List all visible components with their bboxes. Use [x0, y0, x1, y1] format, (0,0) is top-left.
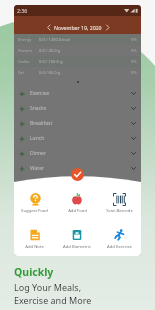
staticText: 2:36	[17, 7, 28, 14]
button[interactable]: Add Biometric	[56, 228, 98, 250]
button[interactable]: Confirm	[71, 168, 84, 181]
staticText: Protein	[18, 48, 32, 54]
staticText: Lunch	[30, 135, 45, 142]
staticText: Add Exercise	[107, 244, 132, 250]
staticText: Quickly	[14, 265, 54, 279]
staticText: 0.0 / 60.0 g	[39, 70, 61, 76]
staticText: Water	[30, 165, 45, 172]
staticText: Breakfast	[30, 120, 53, 127]
staticText: Energy	[18, 37, 32, 43]
button[interactable]: Lunch	[14, 131, 141, 146]
button[interactable]: Energy	[14, 34, 141, 45]
staticText: Dinner	[30, 150, 47, 157]
staticText: Scan Barcode	[106, 208, 133, 214]
staticText: Exercise	[30, 90, 50, 97]
button[interactable]: Scan Barcode	[98, 192, 140, 214]
button[interactable]: Breakfast	[14, 116, 141, 131]
staticText: Add Biometric	[63, 244, 91, 250]
staticText: Snacks	[30, 105, 47, 112]
staticText: Add Note	[25, 244, 44, 250]
button[interactable]: Add Food	[56, 192, 98, 214]
staticText: Fat	[18, 70, 24, 76]
button[interactable]: Dinner	[14, 146, 141, 161]
staticText: Carbs	[18, 59, 30, 65]
button[interactable]: Water	[14, 161, 141, 176]
staticText: 0.0 / 1200.0 kcal	[39, 37, 70, 43]
button[interactable]: Add Note	[14, 228, 56, 250]
staticText: Log Your Meals,	[14, 281, 82, 293]
button[interactable]: Fat	[14, 67, 141, 78]
button[interactable]: Exercise	[14, 86, 141, 101]
staticText: 0%	[131, 37, 137, 43]
button[interactable]: Previous day	[45, 23, 52, 32]
staticText: 0%	[131, 59, 137, 65]
button[interactable]: Snacks	[14, 101, 141, 116]
staticText: 0%	[131, 48, 137, 54]
staticText: Add Food	[68, 208, 87, 214]
button[interactable]: Protein	[14, 45, 141, 56]
staticText: November 19, 2020	[54, 24, 102, 31]
staticText: 0.0 / 45.0 g	[39, 48, 61, 54]
staticText: Suggest Food	[21, 208, 48, 214]
staticText: 0%	[131, 70, 137, 76]
button[interactable]: Suggest Food	[14, 192, 56, 214]
staticText: Exercise and More	[14, 294, 92, 306]
button[interactable]: Next day	[104, 23, 111, 32]
button[interactable]: Carbs	[14, 56, 141, 67]
button[interactable]: Add Exercise	[98, 228, 140, 250]
staticText: 0.0 / 150.0 g	[39, 59, 63, 65]
